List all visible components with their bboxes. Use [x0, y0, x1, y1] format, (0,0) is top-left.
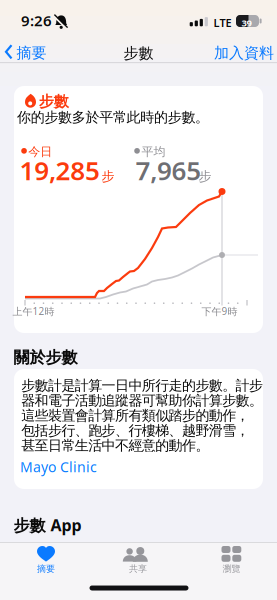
- staticText: 上午12時: [12, 304, 54, 318]
- button[interactable]: Mayo Clinic: [20, 457, 97, 476]
- button[interactable]: 加入資料: [214, 44, 274, 62]
- staticText: 包括步行、跑步、行樓梯、越野滑雪，: [21, 422, 250, 439]
- staticText: Mayo Clinic: [20, 457, 97, 476]
- staticText: 甚至日常生活中不經意的動作。: [21, 437, 209, 454]
- staticText: 步數 App: [14, 514, 82, 535]
- staticText: 9:26: [21, 10, 52, 30]
- staticText: 下午9時: [201, 304, 237, 318]
- staticText: 你的步數多於平常此時的步數。: [17, 109, 209, 126]
- staticText: 19,285: [19, 153, 100, 187]
- staticText: 摘要: [16, 44, 46, 62]
- button[interactable]: 摘要: [11, 545, 81, 579]
- staticText: 這些裝置會計算所有類似踏步的動作，: [21, 407, 250, 424]
- staticText: 39: [241, 16, 251, 29]
- staticText: 步數計是計算一日中所行走的步數。計步: [21, 377, 263, 394]
- staticText: 平均: [141, 144, 165, 159]
- button[interactable]: 返回摘要: [0, 0, 277, 600]
- staticText: 步數: [39, 92, 69, 111]
- staticText: 步數: [123, 44, 153, 62]
- staticText: 7,965: [135, 153, 201, 187]
- staticText: 關於步數: [14, 347, 78, 367]
- staticText: 步: [198, 168, 211, 184]
- staticText: LTE: [213, 15, 231, 30]
- staticText: 今日: [28, 144, 52, 159]
- button[interactable]: 瀏覽: [196, 545, 266, 579]
- button[interactable]: 共享: [103, 545, 173, 579]
- staticText: 共享: [129, 563, 147, 574]
- staticText: 瀏覽: [222, 563, 240, 574]
- staticText: 器和電子活動追蹤器可幫助你計算步數。: [21, 392, 263, 409]
- staticText: 加入資料: [214, 44, 274, 62]
- staticText: 步: [101, 168, 114, 184]
- staticText: 摘要: [37, 563, 55, 574]
